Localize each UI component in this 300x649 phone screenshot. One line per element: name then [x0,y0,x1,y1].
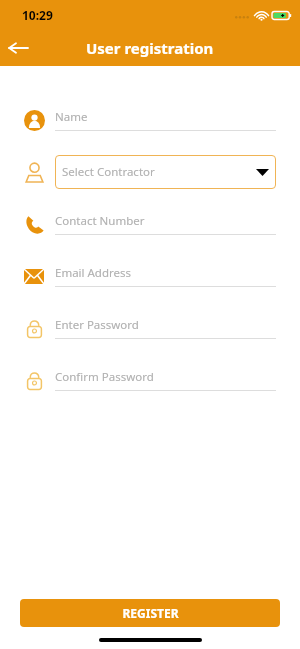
staticText: Contact Number [55,213,145,229]
button[interactable]: Select Contractor [55,155,276,189]
staticText: REGISTER [122,605,179,621]
button[interactable]: Enter Password [55,317,276,339]
staticText: Confirm Password [55,369,154,385]
staticText: 10:29 [22,7,53,23]
staticText: User registration [86,38,214,58]
staticText: Enter Password [55,317,139,333]
staticText: Email Address [55,265,132,281]
button[interactable]: Name [55,109,276,131]
button[interactable]: REGISTER [20,599,280,627]
button[interactable]: Back [0,30,36,66]
staticText: Name [55,109,88,125]
staticText: Select Contractor [62,164,256,180]
button[interactable]: Contact Number [55,213,276,235]
button[interactable]: Email Address [55,265,276,287]
button[interactable]: Confirm Password [55,369,276,391]
